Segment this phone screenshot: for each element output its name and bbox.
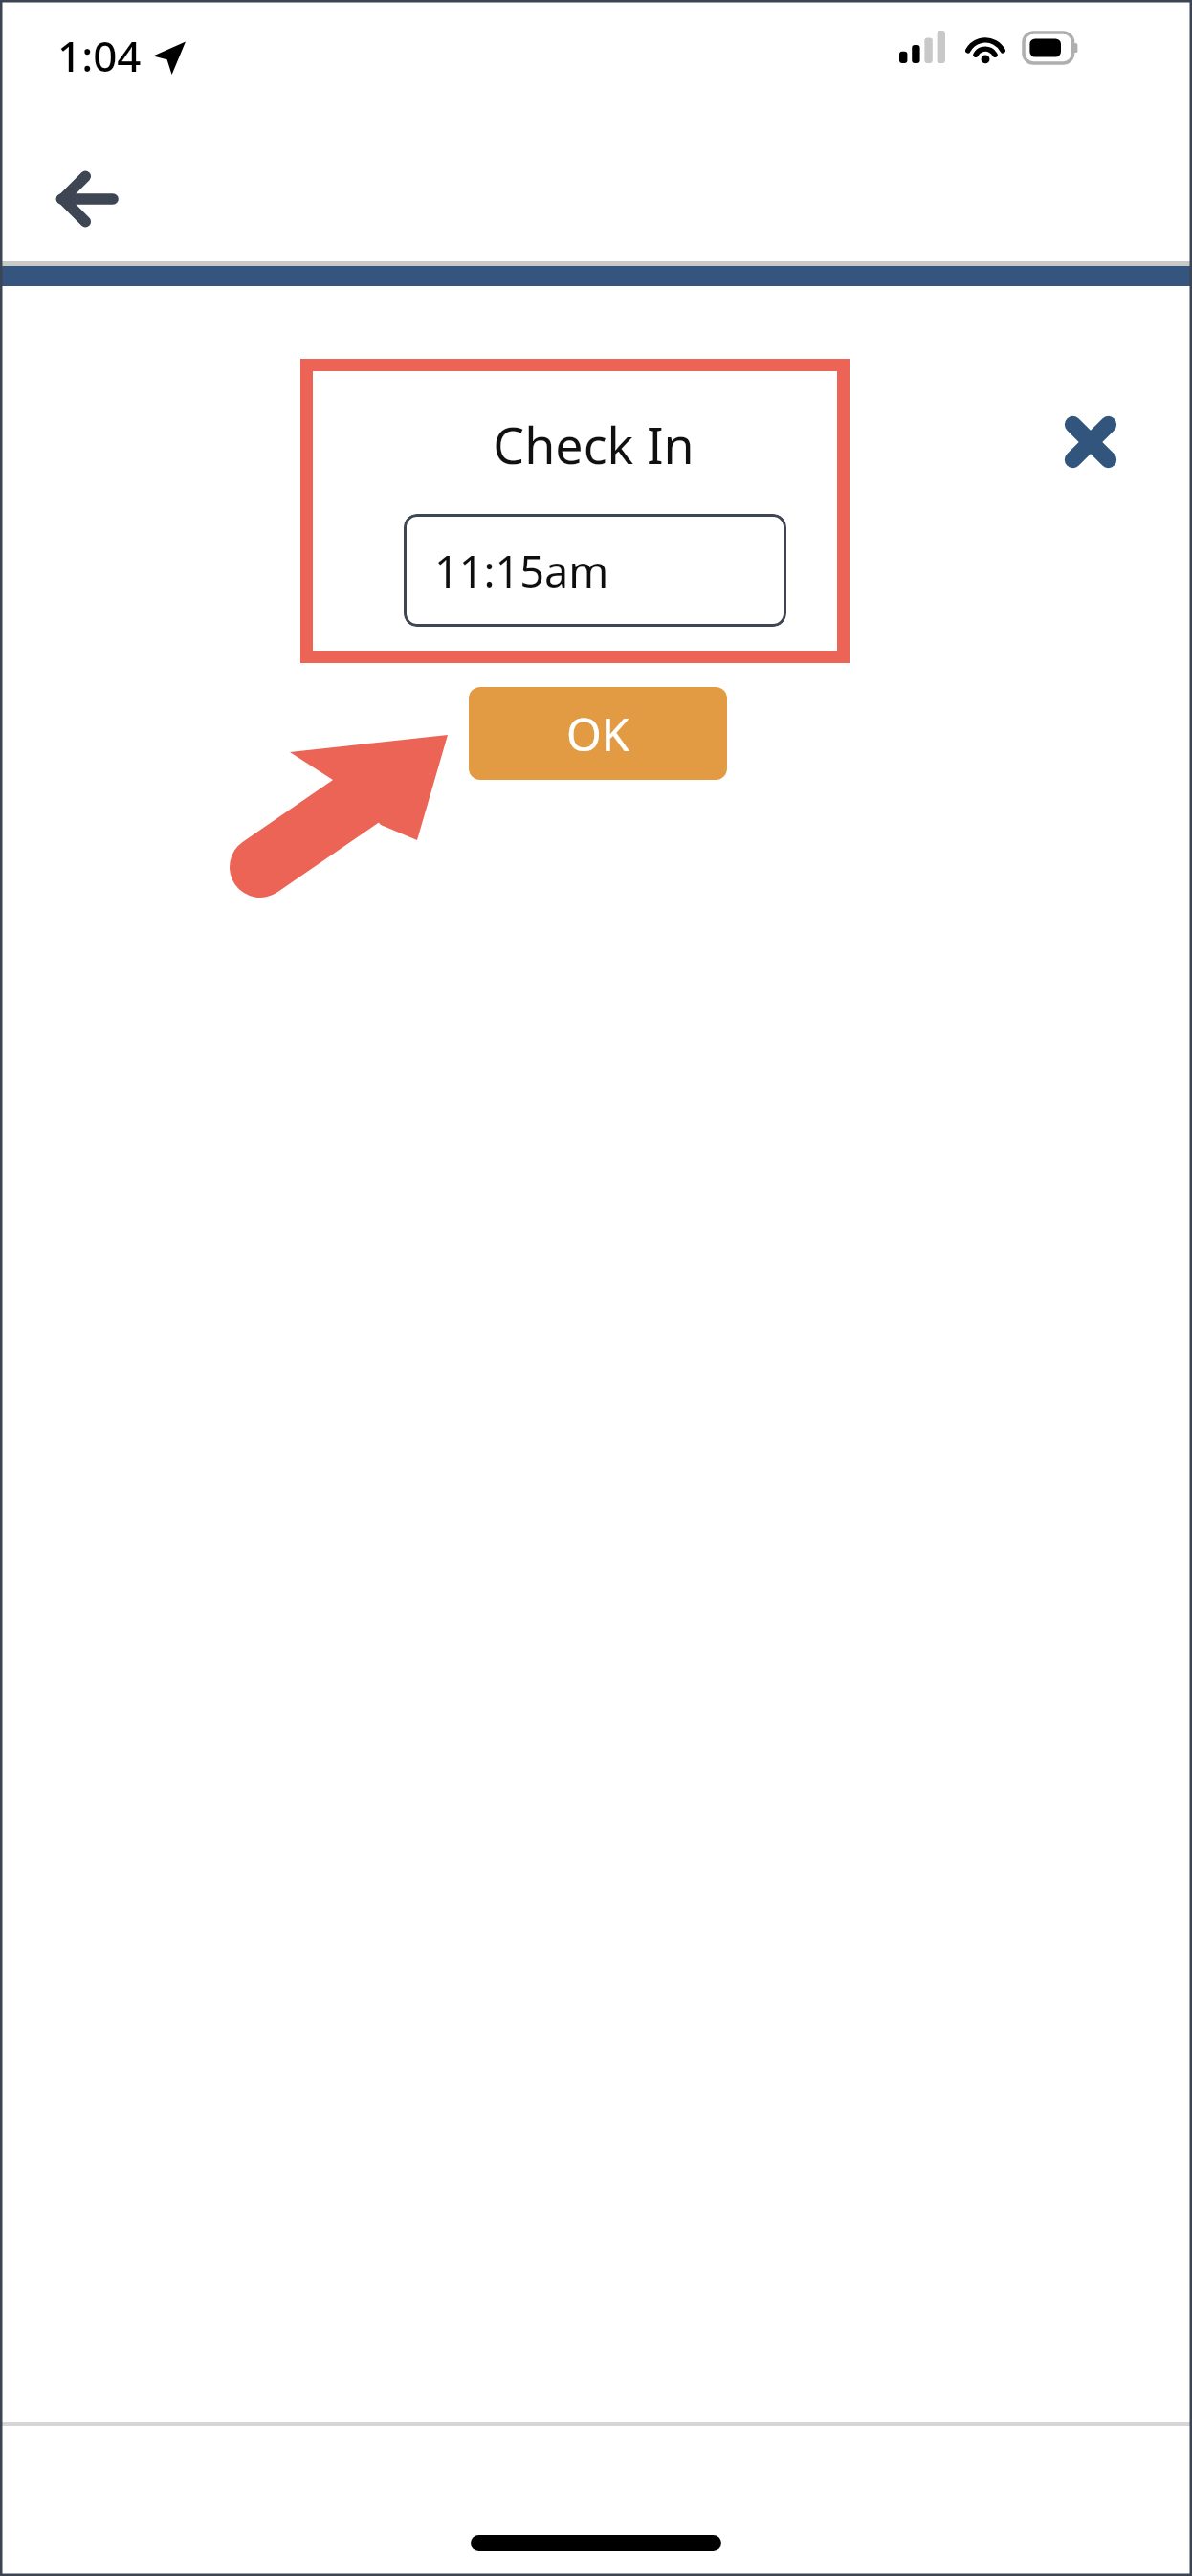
button[interactable]: OK xyxy=(469,687,727,780)
button[interactable]: Close xyxy=(1043,394,1138,490)
staticText: OK xyxy=(566,703,629,765)
staticText: Check In xyxy=(493,411,695,478)
button[interactable]: 11:15am xyxy=(404,514,786,627)
staticText: 11:15am xyxy=(434,542,609,600)
button[interactable]: Back xyxy=(29,144,140,255)
staticText: 1:04 xyxy=(57,27,142,84)
